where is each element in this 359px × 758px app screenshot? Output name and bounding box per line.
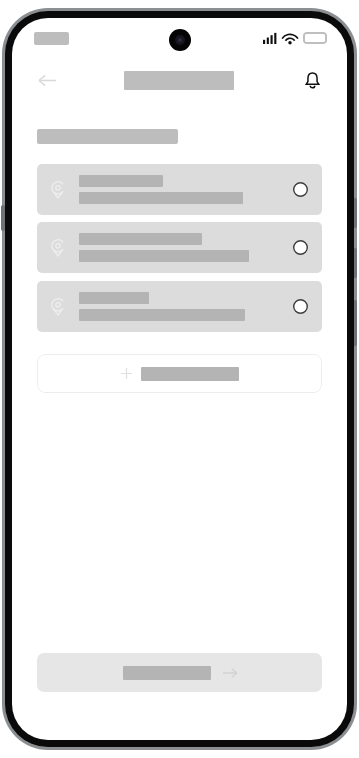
button[interactable] (37, 281, 322, 332)
button[interactable] (37, 222, 322, 273)
button[interactable] (37, 653, 322, 692)
button[interactable]: Notifications (295, 63, 329, 97)
button[interactable] (37, 164, 322, 215)
button[interactable]: Back (30, 63, 64, 97)
button[interactable] (37, 354, 322, 393)
